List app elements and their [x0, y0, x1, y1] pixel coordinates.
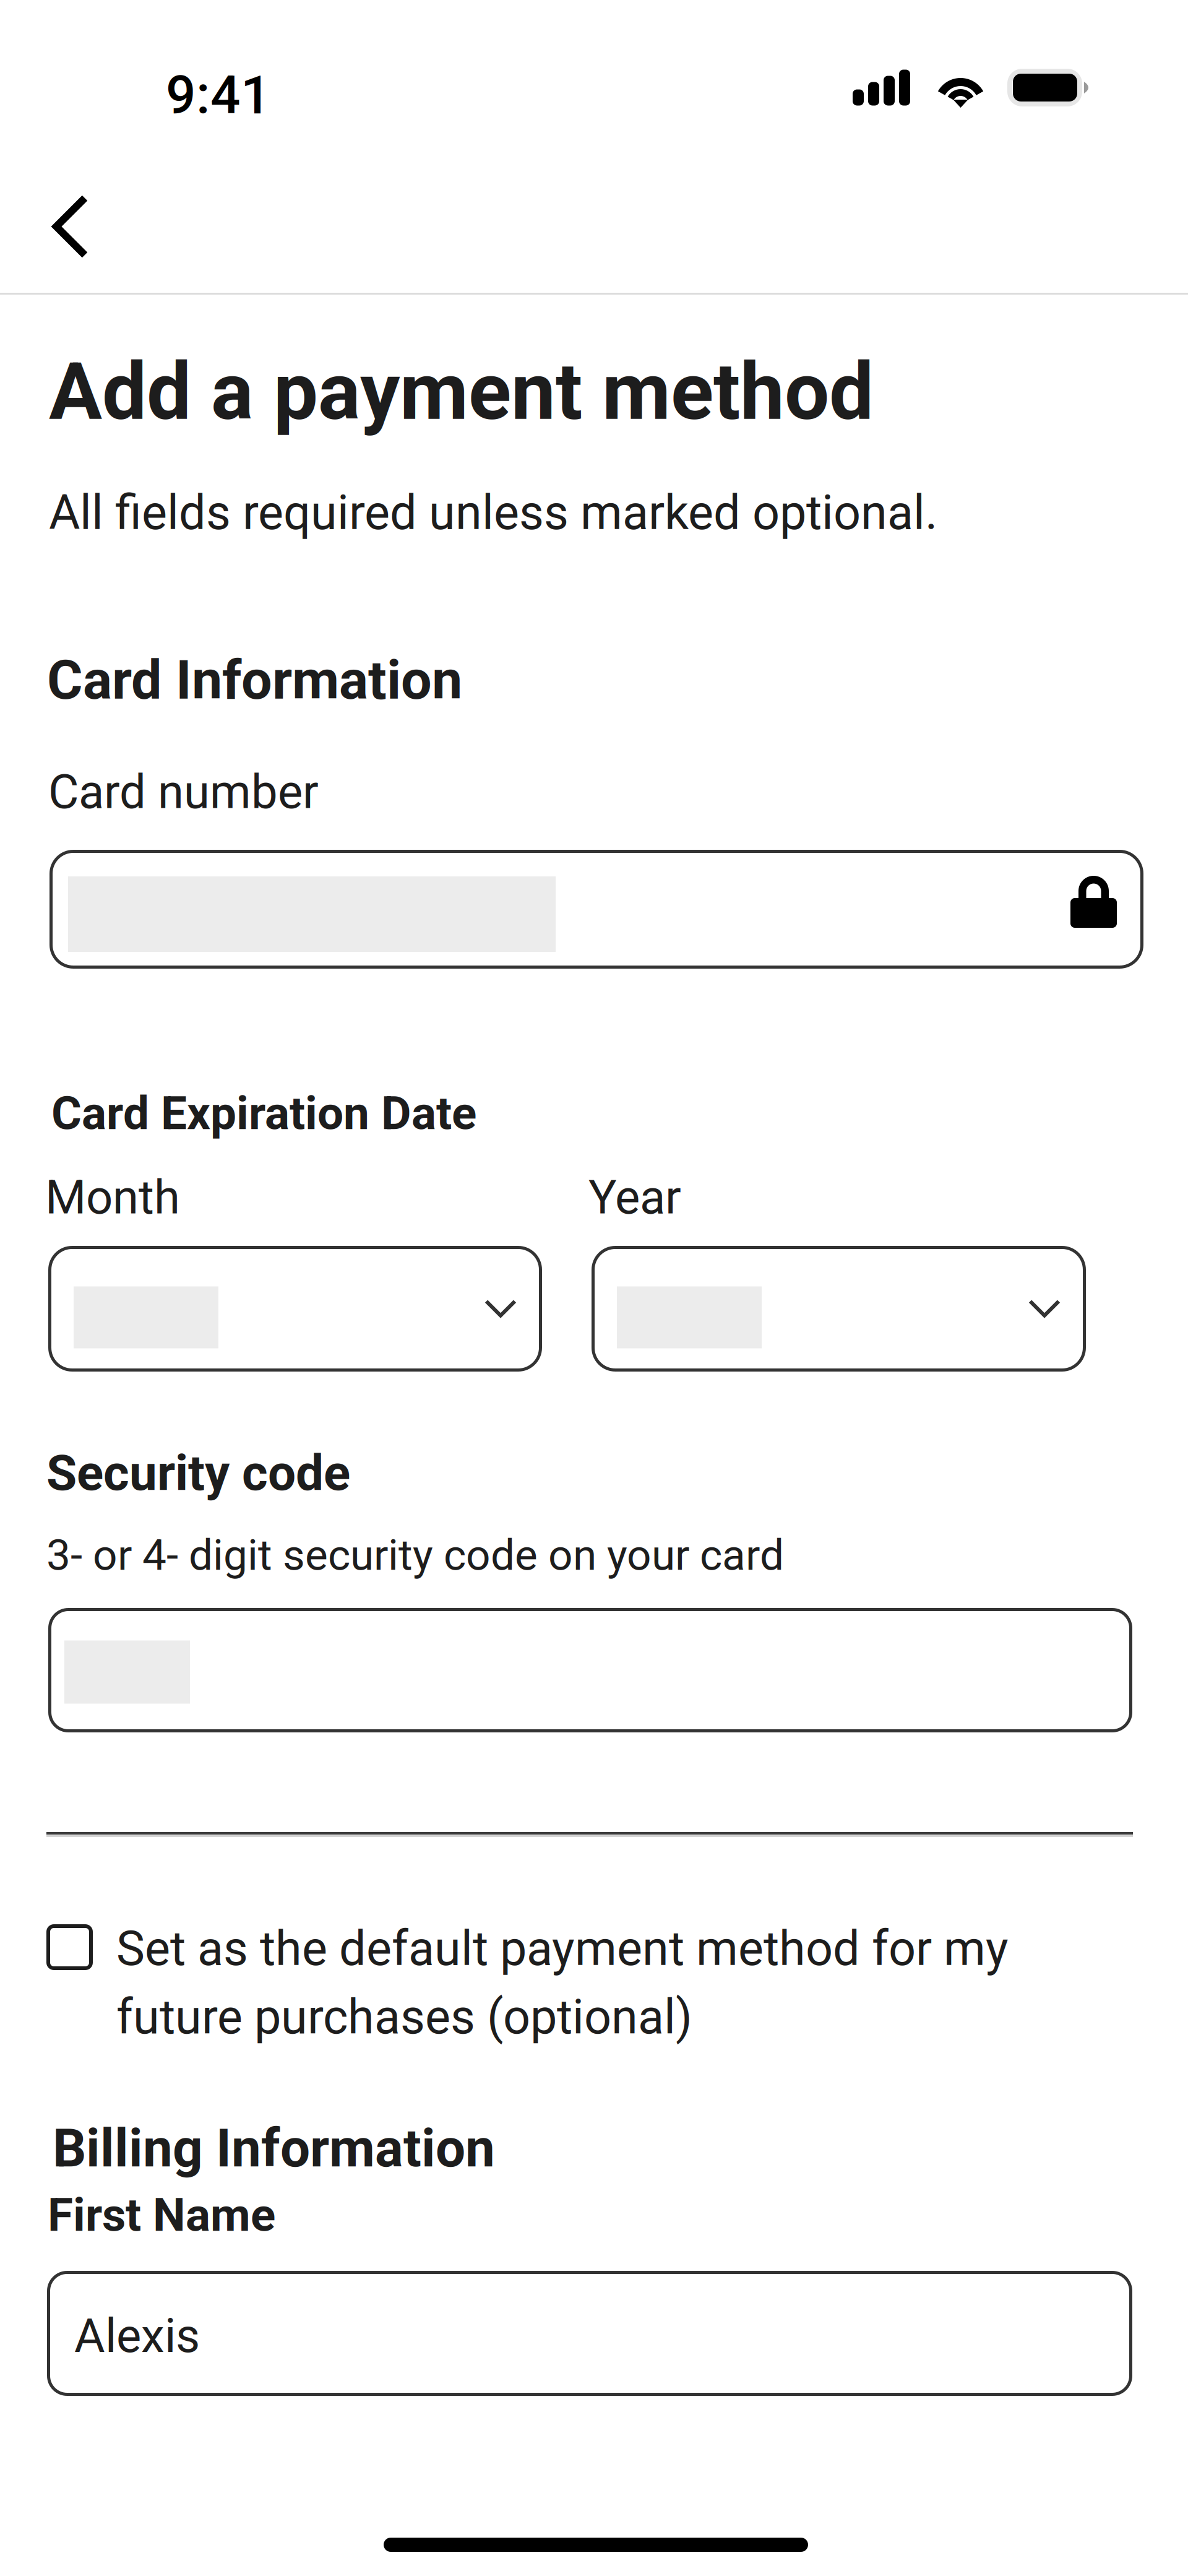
staticText: Add a payment method [49, 345, 874, 438]
staticText: Year [588, 1170, 681, 1225]
staticText: future purchases (optional) [116, 1989, 692, 2045]
staticText: Month [45, 1170, 180, 1225]
staticText: Billing Information [53, 2117, 495, 2179]
staticText: 3- or 4- digit security code on your car… [46, 1530, 784, 1580]
staticText: Card Information [47, 648, 462, 712]
button[interactable]: Set as the default payment method for my [46, 1921, 1133, 2045]
staticText: Alexis [74, 2308, 200, 2363]
staticText: First Name [48, 2188, 275, 2242]
staticText: Card Expiration Date [51, 1086, 476, 1140]
staticText: 9:41 [166, 64, 271, 126]
staticText: Card number [48, 764, 319, 820]
staticText: All fields required unless marked option… [49, 485, 937, 541]
staticText: Set as the default payment method for my [116, 1921, 1009, 1977]
button[interactable]: Back [0, 146, 1188, 293]
staticText: Security code [46, 1444, 350, 1502]
